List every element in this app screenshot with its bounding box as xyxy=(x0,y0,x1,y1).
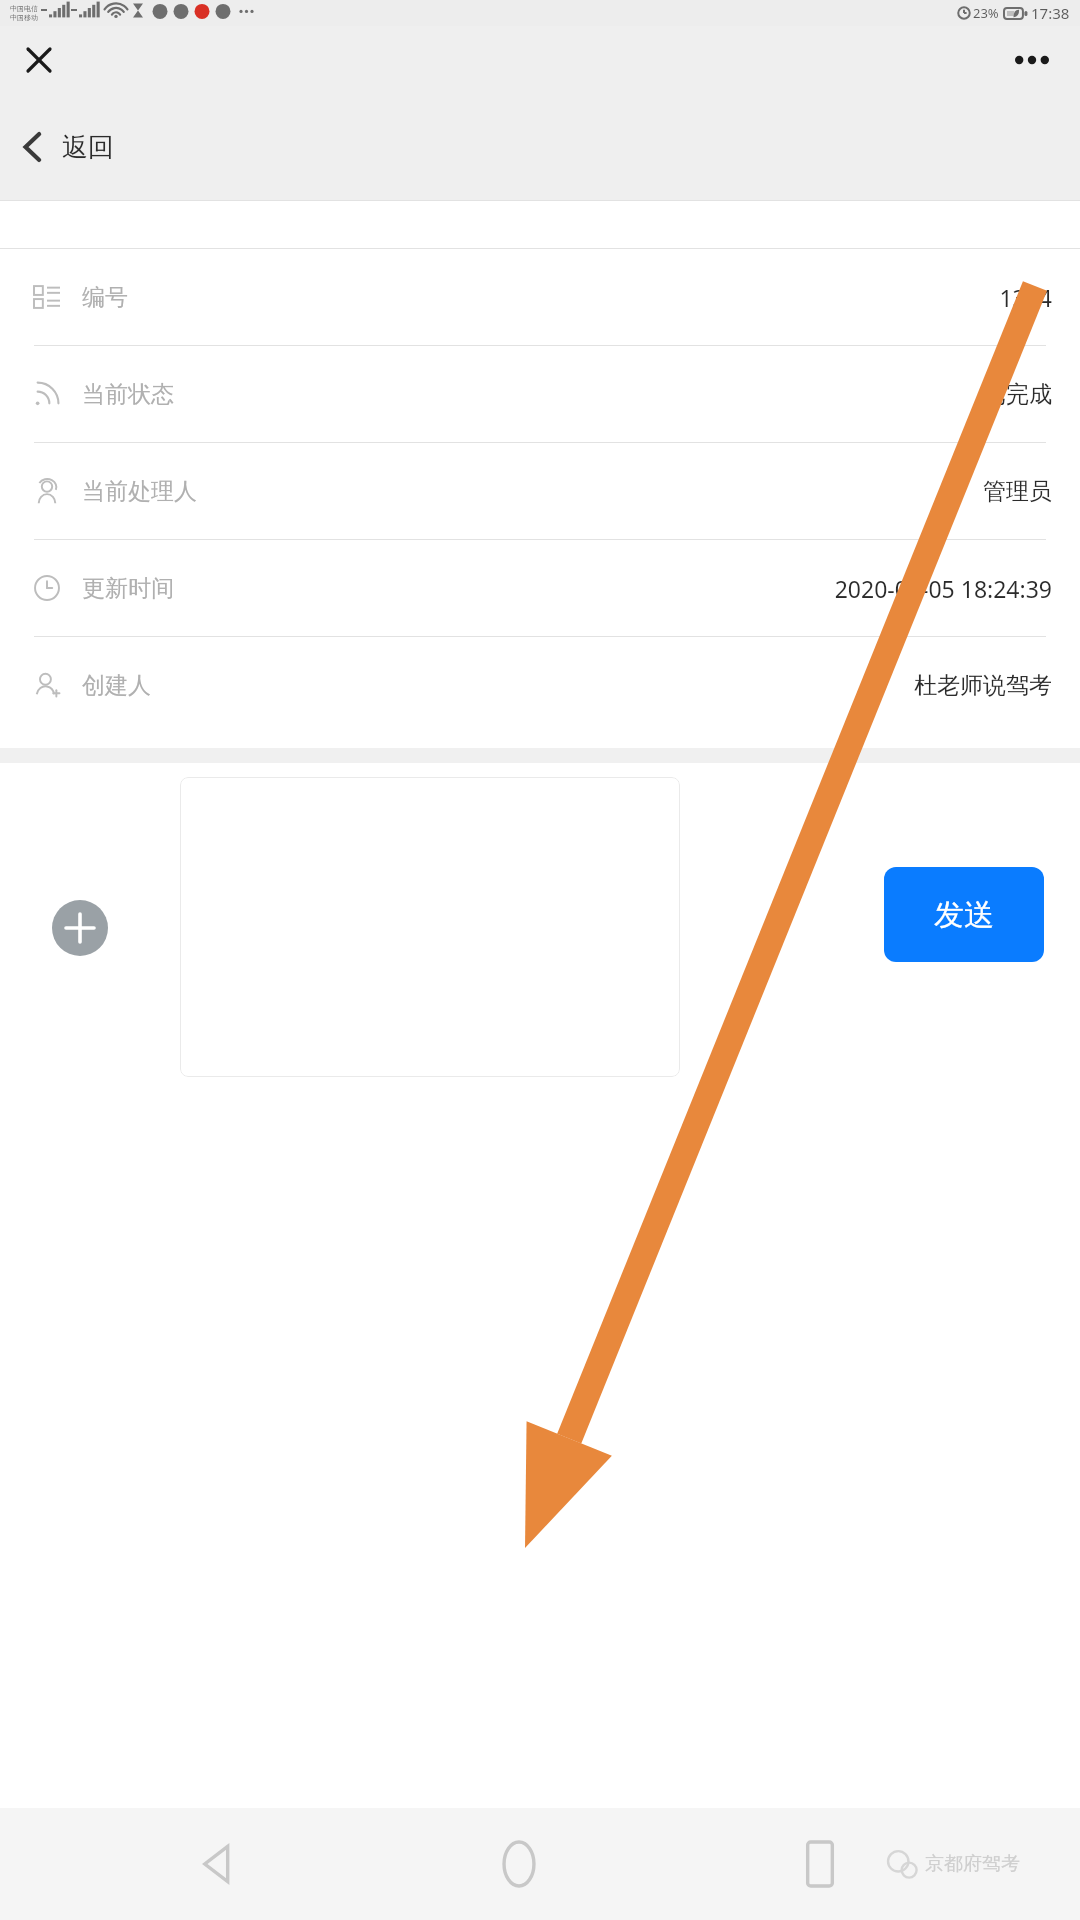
staticText: 当前处理人 xyxy=(82,477,197,506)
staticText: 1344 xyxy=(999,282,1052,313)
staticText: 管理员 xyxy=(983,477,1052,506)
staticText: 当前状态 xyxy=(82,380,174,409)
staticText: 2020-06-05 18:24:39 xyxy=(834,573,1052,604)
button[interactable]: 当前状态 xyxy=(0,346,1080,442)
button[interactable]: More options xyxy=(1006,34,1058,86)
button[interactable]: Recent apps xyxy=(772,1816,868,1912)
staticText: 中国电信 xyxy=(10,4,38,13)
staticText: 杜老师说驾考 xyxy=(914,671,1052,700)
staticText: 17:38 xyxy=(1031,3,1070,23)
staticText: 返回 xyxy=(62,131,114,164)
staticText: 发送 xyxy=(934,896,994,934)
staticText: 编号 xyxy=(82,283,128,312)
button[interactable]: 更新时间 xyxy=(0,540,1080,636)
button[interactable]: Home xyxy=(471,1816,567,1912)
button[interactable]: 当前处理人 xyxy=(0,443,1080,539)
button[interactable]: 返回 xyxy=(0,94,1080,200)
button[interactable]: Back xyxy=(170,1816,266,1912)
staticText: 中国移动 xyxy=(10,13,38,22)
button[interactable]: Add attachment xyxy=(52,900,108,956)
staticText: 已完成 xyxy=(983,380,1052,409)
button[interactable]: 编号 xyxy=(0,249,1080,345)
button[interactable]: 创建人 xyxy=(0,637,1080,733)
staticText: 京都府驾考 xyxy=(925,1852,1020,1876)
staticText: 23% xyxy=(973,4,999,22)
staticText: 创建人 xyxy=(82,671,151,700)
staticText: 更新时间 xyxy=(82,574,174,603)
button[interactable]: Close xyxy=(16,37,62,83)
button[interactable]: 发送 xyxy=(884,867,1044,962)
